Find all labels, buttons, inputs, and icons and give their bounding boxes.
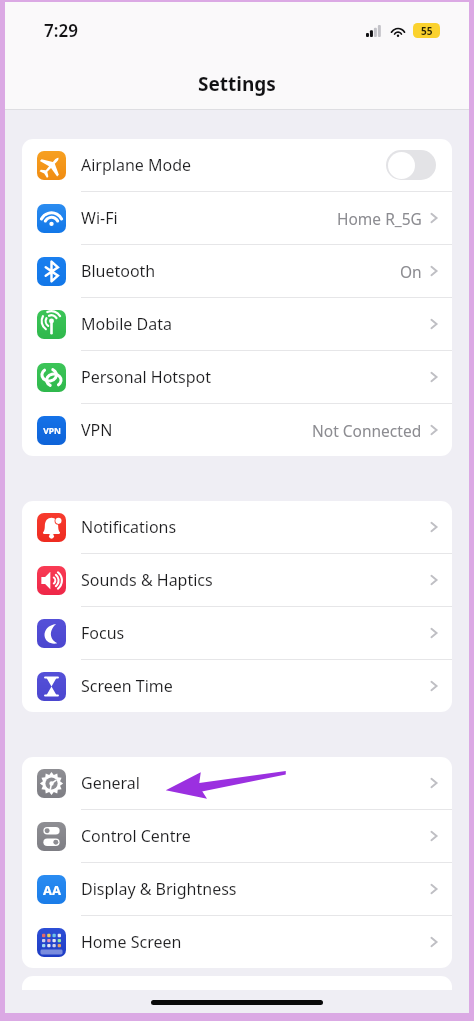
staticText: Personal Hotspot	[81, 366, 212, 388]
staticText: Bluetooth	[81, 260, 156, 282]
button[interactable]: Focus	[22, 607, 452, 660]
staticText: 55	[421, 24, 433, 38]
button[interactable]: Bluetooth	[22, 245, 452, 298]
staticText: Settings	[198, 71, 276, 97]
staticText: General	[81, 772, 140, 794]
button[interactable]: Notifications	[22, 501, 452, 554]
staticText: On	[400, 261, 422, 282]
staticText: Sounds & Haptics	[81, 569, 213, 591]
button[interactable]: General	[22, 757, 452, 810]
button[interactable]: VPN	[22, 404, 452, 456]
staticText: Notifications	[81, 516, 177, 538]
button[interactable]: Mobile Data	[22, 298, 452, 351]
button[interactable]: Screen Time	[22, 660, 452, 712]
button[interactable]: Sounds & Haptics	[22, 554, 452, 607]
button[interactable]: Airplane Mode toggle, off	[386, 150, 436, 180]
button[interactable]: Wi-Fi	[22, 192, 452, 245]
button[interactable]: Home Screen	[22, 916, 452, 968]
staticText: Wi-Fi	[81, 207, 118, 229]
staticText: Display & Brightness	[81, 878, 237, 900]
staticText: Airplane Mode	[81, 154, 192, 176]
staticText: Not Connected	[312, 420, 422, 441]
button[interactable]: Control Centre	[22, 810, 452, 863]
staticText: VPN	[43, 425, 61, 437]
staticText: 7:29	[44, 19, 78, 42]
staticText: Screen Time	[81, 675, 173, 697]
staticText: Focus	[81, 622, 125, 644]
staticText: Home Screen	[81, 931, 182, 953]
staticText: AA	[43, 881, 61, 899]
staticText: Control Centre	[81, 825, 191, 847]
button[interactable]: Personal Hotspot	[22, 351, 452, 404]
staticText: Home R_5G	[337, 208, 422, 229]
button[interactable]: Airplane Mode	[22, 139, 452, 192]
staticText: Mobile Data	[81, 313, 172, 335]
button[interactable]: AA	[22, 863, 452, 916]
staticText: VPN	[81, 419, 113, 441]
